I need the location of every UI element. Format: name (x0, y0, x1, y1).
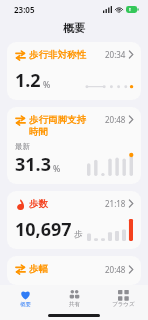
staticText: 31.3 (15, 152, 51, 177)
staticText: 歩行非対称性 (29, 49, 105, 61)
button[interactable]: 歩数 (7, 191, 141, 249)
staticText: 概要 (63, 21, 85, 35)
staticText: 23:05 (14, 4, 35, 15)
staticText: 20:34 (105, 49, 126, 60)
staticText: 1.2 (15, 68, 41, 93)
staticText: 歩幅 (29, 263, 105, 275)
staticText: 概要 (20, 301, 31, 308)
staticText: 歩数 (29, 198, 105, 210)
button[interactable]: 歩行非対称性 (7, 42, 141, 100)
button[interactable]: 歩行両脚支持 時間 (7, 107, 141, 184)
staticText: 21:18 (105, 198, 126, 209)
button[interactable]: 共有 (50, 285, 99, 311)
staticText: 20:48 (105, 114, 126, 125)
staticText: % (53, 163, 61, 175)
staticText: 歩 (74, 229, 83, 240)
staticText: 10,697 (15, 217, 72, 242)
staticText: ブラウズ (112, 301, 135, 308)
staticText: % (43, 79, 51, 91)
staticText: 共有 (69, 301, 80, 308)
button[interactable]: 歩幅 (7, 256, 141, 285)
staticText: 20:48 (105, 264, 126, 275)
staticText: 最新 (15, 142, 30, 151)
button[interactable]: ブラウズ (99, 285, 148, 311)
button[interactable]: 概要 (0, 285, 50, 311)
staticText: 歩行両脚支持 時間 (29, 114, 105, 137)
